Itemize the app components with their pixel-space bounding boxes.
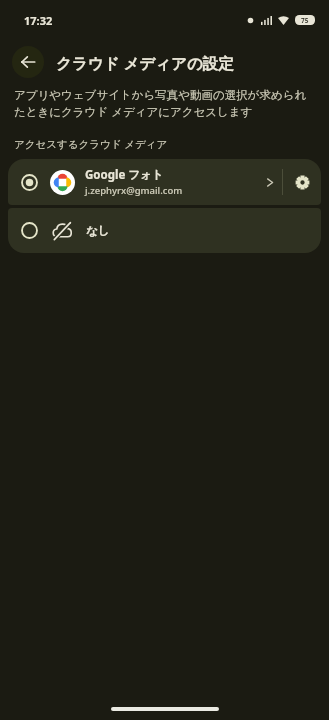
button[interactable]: 詳細	[256, 169, 282, 195]
button[interactable]: Google フォト	[8, 159, 321, 205]
staticText: j.zephyrx@gmail.com	[85, 184, 183, 197]
staticText: アクセスするクラウド メディア	[14, 137, 168, 151]
staticText: アプリやウェブサイトから写真や動画の選択が求められたときにクラウド メディアにア…	[14, 88, 313, 120]
staticText: なし	[86, 224, 110, 238]
button[interactable]: 戻る	[12, 46, 44, 78]
staticText: クラウド メディアの設定	[56, 52, 234, 73]
staticText: Google フォト	[85, 167, 164, 183]
staticText: 75	[301, 16, 309, 25]
button[interactable]: 設定	[283, 163, 321, 201]
staticText: 17:32	[24, 13, 53, 28]
button[interactable]: なし	[8, 208, 321, 253]
